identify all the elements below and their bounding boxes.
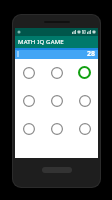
button[interactable]: Option 2	[49, 65, 64, 80]
button[interactable]: Option 4	[21, 93, 36, 108]
button[interactable]: Option 6	[77, 93, 92, 108]
button[interactable]: 28	[15, 48, 98, 59]
other: Home	[42, 167, 72, 173]
button[interactable]: MATH IQ GAME	[15, 36, 98, 48]
button[interactable]: Option 8	[49, 121, 64, 136]
button[interactable]: Option 7	[21, 121, 36, 136]
button[interactable]: Option 1	[21, 65, 36, 80]
staticText: 28	[86, 49, 95, 59]
button[interactable]: Option 3	[77, 65, 92, 80]
staticText: MATH IQ GAME	[18, 38, 64, 46]
button[interactable]: Option 9	[77, 121, 92, 136]
button[interactable]: Option 5	[49, 93, 64, 108]
